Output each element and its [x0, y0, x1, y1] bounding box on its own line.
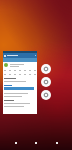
button[interactable]: Recents — [52, 138, 62, 148]
button[interactable]: Home — [31, 138, 41, 148]
button[interactable]: Edit — [41, 77, 51, 87]
button[interactable]: Delete — [41, 90, 51, 100]
button[interactable]: Share — [41, 64, 51, 74]
button[interactable]: Back — [11, 138, 21, 148]
